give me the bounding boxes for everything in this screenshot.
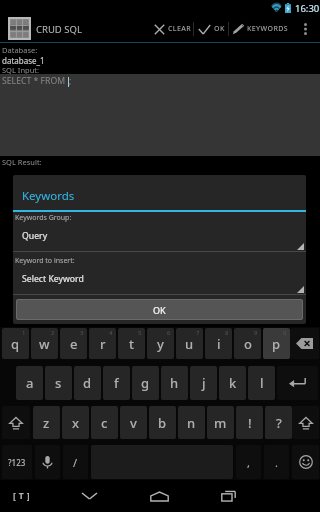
staticText: o — [244, 335, 252, 353]
staticText: 3 — [80, 329, 84, 337]
staticText: n — [187, 414, 196, 432]
staticText: OK — [153, 304, 166, 316]
staticText: Keyword to insert: — [15, 256, 75, 266]
staticText: b — [158, 414, 167, 432]
staticText: w — [39, 335, 50, 353]
button[interactable]: CLEAR — [152, 16, 193, 42]
button[interactable]: / — [63, 445, 88, 479]
button[interactable]: Hide keyboard — [65, 480, 113, 512]
staticText: i — [217, 335, 221, 353]
staticText: ? — [276, 414, 282, 432]
staticText: p — [272, 335, 281, 353]
staticText: x — [72, 414, 80, 432]
staticText: g — [141, 374, 150, 392]
staticText: u — [185, 335, 194, 353]
staticText: Keywords — [22, 188, 75, 204]
staticText: 0 — [283, 329, 287, 337]
button[interactable]: a — [16, 366, 43, 400]
button[interactable]: b — [149, 406, 176, 439]
staticText: ; — [69, 75, 72, 87]
button[interactable]: 7 — [176, 328, 203, 359]
staticText: c — [101, 414, 108, 432]
staticText: SQL Input: — [2, 65, 39, 75]
staticText: 7 — [196, 329, 200, 337]
button[interactable]: 0 — [263, 328, 290, 359]
staticText: 6 — [167, 329, 171, 337]
button[interactable]: Shift — [2, 406, 30, 439]
button[interactable]: v — [120, 406, 147, 439]
button[interactable]: ! — [236, 406, 263, 439]
staticText: , — [247, 455, 250, 470]
button[interactable]: 5 — [118, 328, 145, 359]
button[interactable]: 1 — [2, 328, 29, 359]
staticText: k — [229, 374, 237, 392]
button[interactable]: 9 — [234, 328, 261, 359]
staticText: t — [129, 335, 134, 353]
staticText: SELECT * FROM — [2, 75, 68, 87]
staticText: CLEAR — [168, 24, 192, 34]
button[interactable]: 4 — [89, 328, 116, 359]
button[interactable]: 2 — [31, 328, 58, 359]
button[interactable]: Query — [13, 224, 306, 252]
button[interactable]: x — [62, 406, 89, 439]
staticText: Select Keyword — [22, 273, 84, 285]
button[interactable]: Shift — [292, 406, 319, 439]
button[interactable]: 6 — [147, 328, 174, 359]
staticText: database_1 — [2, 55, 45, 66]
staticText: Keywords Group: — [15, 213, 72, 223]
button[interactable]: c — [91, 406, 118, 439]
staticText: OK — [214, 24, 225, 34]
staticText: f — [114, 374, 119, 392]
button[interactable]: Home — [135, 480, 183, 512]
staticText: 1 — [22, 329, 26, 337]
button[interactable]: 8 — [205, 328, 232, 359]
button[interactable]: OK — [16, 299, 303, 320]
button[interactable]: s — [45, 366, 72, 400]
staticText: 4 — [109, 329, 113, 337]
staticText: ?123 — [8, 457, 26, 468]
staticText: r — [100, 335, 106, 353]
staticText: Query — [22, 230, 48, 242]
button[interactable]: . — [264, 445, 289, 479]
button[interactable]: KEYWORDS — [231, 16, 289, 42]
staticText: m — [214, 414, 227, 432]
button[interactable]: , — [236, 445, 261, 479]
staticText: l — [260, 374, 264, 392]
staticText: d — [83, 374, 92, 392]
button[interactable]: Enter — [277, 366, 318, 400]
button[interactable]: 3 — [60, 328, 87, 359]
button[interactable]: z — [33, 406, 60, 439]
button[interactable]: h — [161, 366, 188, 400]
staticText: [ T ] — [13, 490, 30, 502]
button[interactable]: k — [219, 366, 246, 400]
button[interactable]: OK — [196, 16, 226, 42]
staticText: Database: — [2, 45, 38, 55]
staticText: CRUD SQL — [36, 23, 82, 36]
button[interactable]: n — [178, 406, 205, 439]
button[interactable]: Voice input — [35, 445, 60, 479]
button[interactable]: Backspace — [290, 328, 319, 359]
staticText: 16:30 — [295, 2, 320, 15]
staticText: h — [170, 374, 179, 392]
staticText: KEYWORDS — [247, 24, 289, 34]
staticText: q — [11, 335, 20, 353]
button[interactable]: Select Keyword — [13, 267, 306, 295]
staticText: ! — [248, 414, 252, 432]
button[interactable]: d — [74, 366, 101, 400]
button[interactable]: j — [190, 366, 217, 400]
button[interactable]: ?123 — [2, 445, 32, 479]
button[interactable]: Recents — [204, 480, 252, 512]
button[interactable]: Emoji — [292, 445, 319, 479]
staticText: SQL Result: — [2, 157, 42, 167]
button[interactable]: ? — [265, 406, 292, 439]
button[interactable]: g — [132, 366, 159, 400]
button[interactable]: m — [207, 406, 234, 439]
button[interactable]: More options — [294, 16, 316, 42]
staticText: 2 — [51, 329, 55, 337]
staticText: 8 — [225, 329, 229, 337]
staticText: 9 — [254, 329, 258, 337]
button[interactable]: f — [103, 366, 130, 400]
button[interactable]: l — [248, 366, 275, 400]
staticText: 5 — [138, 329, 142, 337]
